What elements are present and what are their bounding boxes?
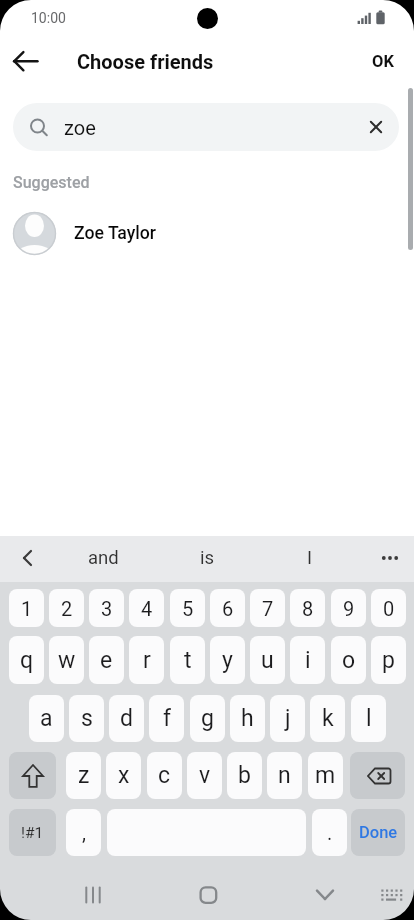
button[interactable]: j [270, 695, 305, 742]
button[interactable]: f [149, 695, 184, 742]
button[interactable] [72, 877, 112, 913]
button[interactable]: 3 [89, 589, 124, 627]
staticText: c [158, 762, 171, 789]
button[interactable]: zoe [13, 103, 399, 151]
staticText: n [278, 762, 291, 789]
button[interactable]: h [230, 695, 265, 742]
staticText: w [58, 647, 76, 674]
button[interactable]: , [66, 809, 101, 856]
staticText: 4 [141, 597, 153, 620]
staticText: b [238, 762, 251, 789]
button[interactable]: 1 [9, 589, 44, 627]
button[interactable]: g [190, 695, 225, 742]
button[interactable]: m [308, 752, 343, 799]
button[interactable] [375, 880, 409, 912]
button[interactable]: t [170, 636, 205, 684]
button[interactable]: 8 [290, 589, 325, 627]
staticText: , [82, 821, 86, 844]
button[interactable]: I [259, 539, 361, 576]
button[interactable]: i [290, 636, 325, 684]
staticText: OK [372, 52, 394, 71]
button[interactable]: 7 [250, 589, 285, 627]
button[interactable]: d [109, 695, 144, 742]
staticText: !#1 [21, 824, 44, 842]
staticText: 0 [383, 597, 395, 620]
button[interactable]: e [89, 636, 124, 684]
staticText: z [78, 762, 90, 789]
staticText: f [163, 705, 171, 732]
staticText: y [222, 647, 233, 674]
button[interactable]: !#1 [9, 809, 56, 856]
button[interactable] [307, 877, 345, 913]
button[interactable]: n [267, 752, 302, 799]
button[interactable]: z [66, 752, 101, 799]
button[interactable]: 6 [210, 589, 245, 627]
staticText: 1 [21, 597, 33, 620]
button[interactable]: and [52, 539, 154, 576]
staticText: j [285, 705, 291, 732]
button[interactable]: y [210, 636, 245, 684]
staticText: zoe [64, 116, 96, 139]
button[interactable]: w [49, 636, 84, 684]
staticText: 9 [343, 597, 355, 620]
button[interactable]: o [331, 636, 366, 684]
staticText: Choose friends [77, 50, 214, 73]
staticText: h [241, 705, 254, 732]
staticText: 6 [222, 597, 234, 620]
staticText: q [20, 647, 34, 674]
button[interactable]: s [69, 695, 104, 742]
button[interactable]: OK [362, 47, 403, 76]
staticText: and [88, 547, 119, 569]
button[interactable] [8, 48, 46, 78]
button[interactable]: 0 [371, 589, 406, 627]
button[interactable]: k [310, 695, 345, 742]
button[interactable] [366, 540, 410, 578]
button[interactable] [9, 752, 56, 799]
staticText: . [327, 821, 333, 844]
staticText: o [342, 647, 356, 674]
staticText: r [143, 647, 151, 674]
button[interactable]: 2 [49, 589, 84, 627]
button[interactable] [190, 877, 228, 913]
staticText: i [305, 647, 311, 674]
button[interactable]: 9 [331, 589, 366, 627]
staticText: e [100, 647, 113, 674]
button[interactable]: p [371, 636, 406, 684]
staticText: v [199, 762, 211, 789]
staticText: 5 [182, 597, 194, 620]
staticText: s [81, 705, 93, 732]
button[interactable]: u [250, 636, 285, 684]
staticText: p [382, 647, 395, 674]
staticText: m [315, 762, 336, 789]
button[interactable]: 5 [170, 589, 205, 627]
staticText: 10:00 [31, 10, 66, 26]
staticText: d [120, 705, 133, 732]
staticText: 7 [262, 597, 274, 620]
button[interactable]: Zoe Taylor [0, 205, 414, 261]
button[interactable]: l [351, 695, 386, 742]
button[interactable] [4, 540, 48, 578]
button[interactable]: b [227, 752, 262, 799]
button[interactable]: c [147, 752, 182, 799]
button[interactable]: x [106, 752, 141, 799]
staticText: a [40, 705, 53, 732]
button[interactable]: a [29, 695, 64, 742]
button[interactable]: Done [351, 809, 405, 856]
button[interactable]: q [9, 636, 44, 684]
staticText: Zoe Taylor [74, 223, 157, 244]
button[interactable] [350, 752, 405, 799]
button[interactable]: is [156, 539, 258, 576]
staticText: k [322, 705, 334, 732]
button[interactable]: 4 [129, 589, 164, 627]
button[interactable]: r [129, 636, 164, 684]
button[interactable]: . [312, 809, 347, 856]
staticText: 2 [61, 597, 73, 620]
button[interactable]: v [187, 752, 222, 799]
staticText: t [184, 647, 192, 674]
staticText: I [307, 547, 313, 569]
staticText: 8 [302, 597, 314, 620]
staticText: Done [359, 823, 398, 842]
staticText: is [200, 547, 215, 569]
staticText: 3 [101, 597, 113, 620]
